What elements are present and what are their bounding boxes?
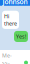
staticText: Hi there: [4, 13, 17, 27]
staticText: Yes!: [16, 33, 26, 40]
staticText: Message: [2, 52, 12, 64]
staticText: Alice Johnson: [2, 0, 27, 6]
